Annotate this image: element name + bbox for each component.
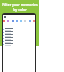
button[interactable] xyxy=(3,40,35,43)
button[interactable] xyxy=(3,28,35,31)
button[interactable] xyxy=(3,34,35,37)
staticText: by color xyxy=(13,7,27,12)
staticText: Filter your memories xyxy=(2,2,38,7)
button[interactable] xyxy=(3,37,35,40)
button[interactable] xyxy=(3,31,35,34)
button[interactable] xyxy=(3,43,35,46)
